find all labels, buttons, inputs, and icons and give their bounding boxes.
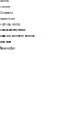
staticText: New order — [0, 47, 15, 50]
staticText: Comment — [0, 5, 10, 8]
staticText: Comment — [0, 11, 13, 15]
staticText: New order — [0, 41, 11, 44]
staticText: Comment — [0, 0, 9, 2]
staticText: Additional services — [0, 23, 20, 26]
staticText: Cash-on-delivery service — [0, 35, 35, 38]
staticText: Cash-on-delivery service — [0, 29, 25, 32]
staticText: Additional services — [0, 18, 15, 20]
